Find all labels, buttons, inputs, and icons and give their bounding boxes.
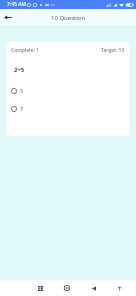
staticText: 10 Question xyxy=(51,14,86,22)
staticText: Target: 10 xyxy=(101,47,125,54)
button[interactable]: Back xyxy=(81,280,107,296)
staticText: Complete: 1 xyxy=(11,47,40,54)
staticText: 7:45 AM xyxy=(7,1,26,8)
button[interactable]: Recents xyxy=(27,280,53,296)
button[interactable]: Back xyxy=(1,11,14,24)
button[interactable]: 5 xyxy=(6,87,130,94)
button[interactable]: 7 xyxy=(6,105,130,112)
staticText: 7 xyxy=(20,105,24,112)
button[interactable]: Hide keyboard xyxy=(106,280,132,296)
button[interactable]: Home xyxy=(54,280,80,296)
staticText: 5 xyxy=(20,87,24,94)
staticText: 2+5 xyxy=(14,66,25,74)
